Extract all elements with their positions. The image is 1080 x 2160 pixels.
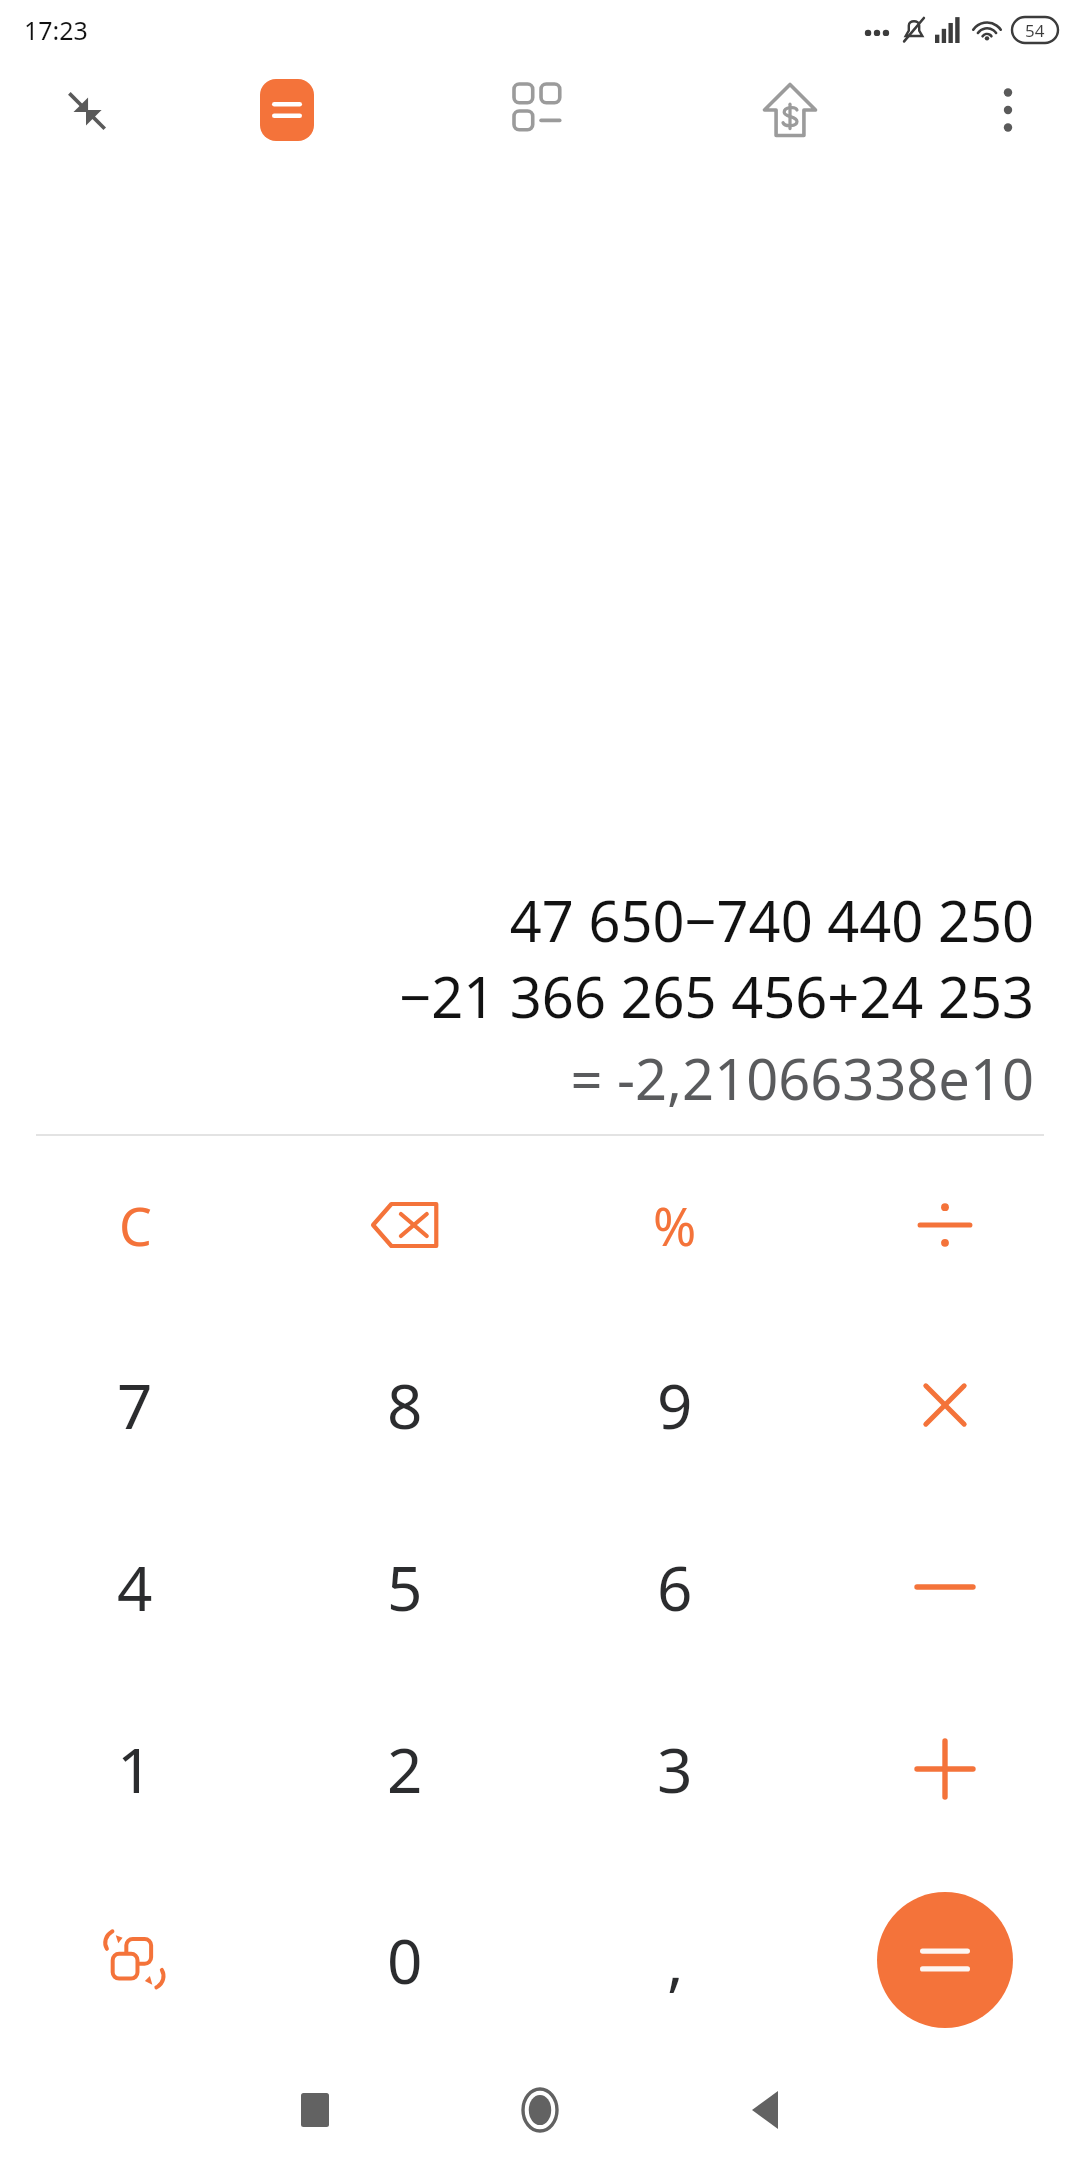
button[interactable]: Zero [270, 1860, 540, 2060]
button[interactable]: Recents [255, 2060, 375, 2160]
staticText: C [119, 1190, 152, 1261]
button[interactable]: 1 [0, 1678, 270, 1860]
button[interactable]: 5 [270, 1496, 540, 1678]
staticText: 4 [117, 1545, 153, 1629]
staticText: 17:23 [24, 13, 88, 47]
staticText: 2 [387, 1727, 423, 1811]
staticText: 1 [117, 1727, 153, 1811]
button[interactable]: Multiply [810, 1314, 1080, 1496]
button[interactable]: 3 [540, 1678, 810, 1860]
staticText: 7 [117, 1363, 153, 1447]
button[interactable]: More options [958, 60, 1058, 160]
staticText: 9 [657, 1363, 693, 1447]
staticText: = -2,21066338e10 [570, 1040, 1034, 1116]
button[interactable]: Percent [540, 1136, 810, 1314]
staticText: 6 [657, 1545, 693, 1629]
button[interactable]: Backspace [270, 1136, 540, 1314]
button[interactable]: 6 [540, 1496, 810, 1678]
button[interactable]: 8 [270, 1314, 540, 1496]
staticText: 3 [657, 1727, 693, 1811]
button[interactable]: Minus [810, 1496, 1080, 1678]
staticText: 0 [387, 1918, 423, 2002]
button[interactable]: Unit convert [0, 1860, 270, 2060]
staticText: % [653, 1190, 697, 1261]
button[interactable]: Clear [0, 1136, 270, 1314]
button[interactable]: Plus [810, 1678, 1080, 1860]
button[interactable]: Decimal separator [540, 1860, 810, 2060]
staticText: −21 366 265 456+24 253 [399, 958, 1034, 1034]
button[interactable]: 7 [0, 1314, 270, 1496]
button[interactable]: Collapse [36, 60, 136, 160]
staticText: 8 [387, 1363, 423, 1447]
button[interactable]: 2 [270, 1678, 540, 1860]
button[interactable]: Calculator [232, 60, 342, 160]
button[interactable]: Divide [810, 1136, 1080, 1314]
button[interactable]: Home [480, 2060, 600, 2160]
button[interactable]: Equals [877, 1892, 1013, 2028]
staticText: , [667, 1919, 684, 2001]
staticText: 5 [387, 1545, 423, 1629]
staticText: 54 [1025, 19, 1045, 42]
button[interactable]: 9 [540, 1314, 810, 1496]
staticText: 47 650−740 440 250 [509, 882, 1034, 958]
button[interactable]: Mortgage [737, 60, 842, 160]
button[interactable]: Converter [487, 60, 592, 160]
button[interactable]: Back [705, 2060, 825, 2160]
button[interactable]: 4 [0, 1496, 270, 1678]
